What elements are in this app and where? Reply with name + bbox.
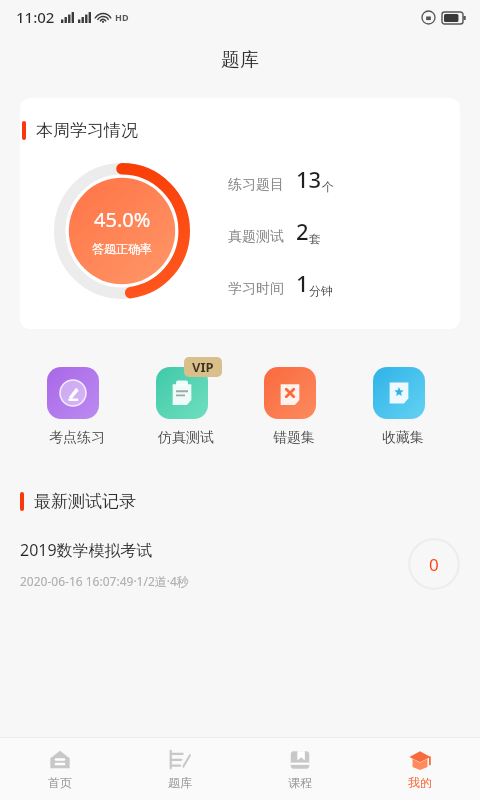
staticText: 0 xyxy=(429,553,439,576)
staticText: 13 xyxy=(296,164,322,194)
button[interactable]: 我的 xyxy=(360,738,480,800)
staticText: 错题集 xyxy=(273,429,315,447)
button[interactable]: 考点练习 xyxy=(35,357,119,447)
staticText: 仿真测试 xyxy=(158,429,214,447)
staticText: 分钟 xyxy=(309,283,333,298)
staticText: 练习题目 xyxy=(228,176,284,194)
other: 首页 xyxy=(49,749,71,771)
staticText: 2020-06-16 16:07:49·1/2道·4秒 xyxy=(20,573,189,589)
staticText: VIP xyxy=(192,358,214,376)
button[interactable]: 收藏集 xyxy=(361,357,445,447)
other: 我的 xyxy=(409,749,431,771)
staticText: 题库 xyxy=(168,775,192,790)
staticText: 45.0% xyxy=(94,206,151,233)
staticText: 收藏集 xyxy=(382,429,424,447)
button[interactable]: 题库 xyxy=(120,738,240,800)
button[interactable]: 课程 xyxy=(240,738,360,800)
staticText: 本周学习情况 xyxy=(36,120,138,141)
button[interactable]: 首页 xyxy=(0,738,120,800)
staticText: 真题测试 xyxy=(228,228,284,246)
staticText: 我的 xyxy=(408,775,432,790)
button[interactable]: 错题集 xyxy=(252,357,336,447)
staticText: 个 xyxy=(322,179,334,194)
staticText: 学习时间 xyxy=(228,280,284,298)
other: 课程 xyxy=(289,749,311,771)
button[interactable]: 2019数学模拟考试 xyxy=(0,538,480,590)
staticText: 1 xyxy=(296,268,309,298)
staticText: 11:02 xyxy=(16,7,55,27)
staticText: 答题正确率 xyxy=(92,241,152,256)
staticText: 题库 xyxy=(221,48,259,72)
staticText: 课程 xyxy=(288,775,312,790)
staticText: 首页 xyxy=(48,775,72,790)
staticText: 考点练习 xyxy=(49,429,105,447)
button[interactable]: VIP xyxy=(144,357,228,447)
staticText: 套 xyxy=(309,231,321,246)
staticText: HD xyxy=(115,11,129,23)
staticText: 2 xyxy=(296,216,309,246)
button[interactable]: 本周学习情况 xyxy=(20,98,460,329)
staticText: 最新测试记录 xyxy=(34,491,136,512)
other: 题库 xyxy=(169,749,191,771)
staticText: 2019数学模拟考试 xyxy=(20,539,153,561)
